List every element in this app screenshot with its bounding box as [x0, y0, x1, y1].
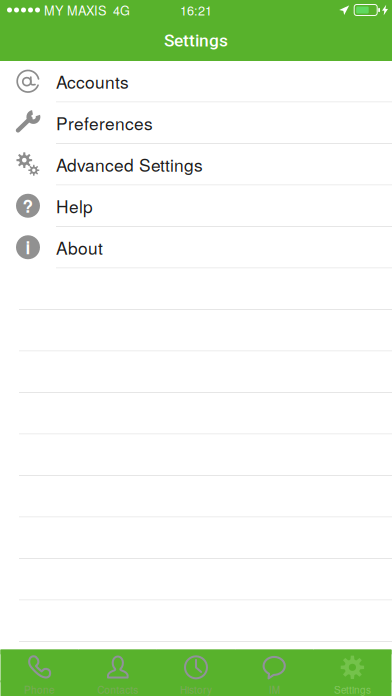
staticText: ?	[22, 193, 33, 218]
staticText: Advanced Settings	[56, 152, 203, 177]
staticText: i	[25, 235, 30, 260]
staticText: Phone	[24, 682, 55, 696]
button[interactable]: ?	[0, 185, 392, 227]
button[interactable]: Preferences	[0, 102, 392, 144]
staticText: Settings	[164, 30, 228, 51]
button[interactable]: Accounts	[0, 61, 392, 102]
staticText: Contacts	[97, 682, 138, 696]
button[interactable]: IM	[235, 650, 313, 696]
staticText: Preferences	[56, 110, 153, 135]
staticText: About	[56, 235, 103, 260]
staticText: 4G	[113, 1, 130, 19]
button[interactable]: Settings	[313, 650, 391, 696]
staticText: Help	[56, 193, 93, 218]
button[interactable]: Phone	[0, 650, 79, 696]
staticText: History	[180, 682, 212, 696]
button[interactable]: Advanced Settings	[0, 144, 392, 185]
staticText: Settings	[334, 682, 371, 696]
staticText: 16:21	[180, 1, 212, 19]
button[interactable]: History	[157, 650, 235, 696]
staticText: MY MAXIS	[44, 1, 106, 19]
staticText: IM	[269, 682, 280, 696]
button[interactable]: i	[0, 227, 392, 268]
staticText: Accounts	[56, 69, 129, 94]
button[interactable]: Contacts	[79, 650, 157, 696]
